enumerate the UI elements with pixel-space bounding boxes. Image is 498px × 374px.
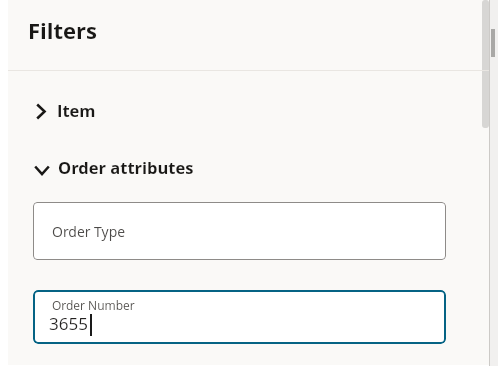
staticText: Filters: [28, 15, 97, 45]
button[interactable]: Order attributes: [30, 155, 450, 183]
staticText: Order Number: [52, 297, 135, 313]
staticText: 3655: [49, 312, 88, 335]
staticText: Order Type: [52, 222, 126, 241]
button[interactable]: Order Type: [33, 202, 446, 260]
button[interactable]: Item: [30, 98, 450, 126]
staticText: Order attributes: [58, 156, 194, 178]
button[interactable]: Order Number: [33, 290, 446, 344]
staticText: Item: [57, 99, 96, 121]
